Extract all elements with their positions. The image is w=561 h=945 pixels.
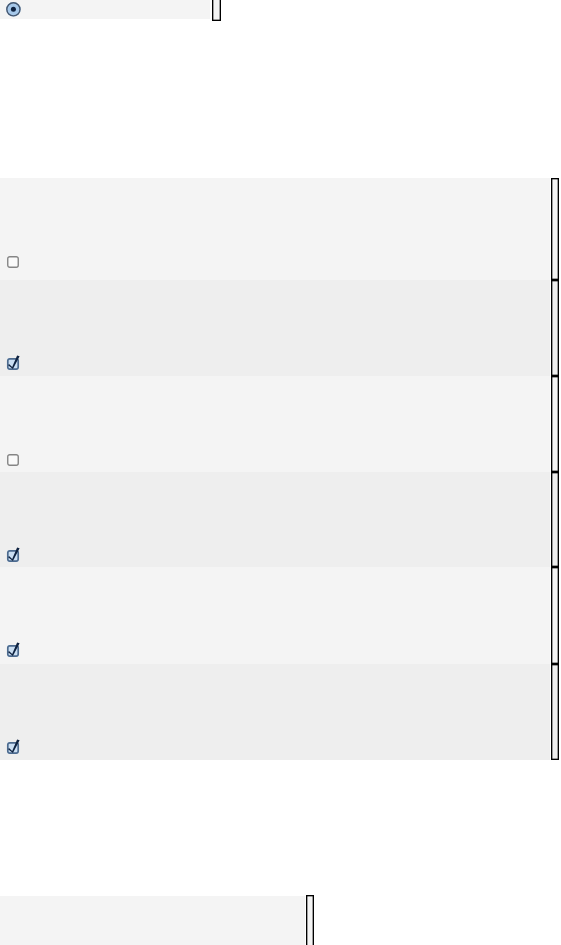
button[interactable]: Action <box>306 895 314 945</box>
button[interactable]: More options 2 <box>551 280 559 376</box>
button[interactable]: Menu <box>212 0 221 21</box>
button[interactable]: Item 1, not checked <box>7 248 27 268</box>
button[interactable]: Item 2, checked <box>0 280 550 376</box>
button[interactable]: Item 6, checked <box>7 734 27 754</box>
button[interactable]: Item 2, checked <box>7 350 27 370</box>
button[interactable]: Item 3, not checked <box>0 376 550 472</box>
button[interactable]: Item 5, checked <box>7 637 27 657</box>
button[interactable]: More options 3 <box>551 376 559 472</box>
button[interactable]: More options 5 <box>551 567 559 664</box>
button[interactable]: More options 1 <box>551 178 559 280</box>
button[interactable]: Item 3, not checked <box>7 446 27 466</box>
button[interactable]: Item 4, checked <box>7 542 27 562</box>
button[interactable]: Item 5, checked <box>0 567 550 664</box>
button[interactable]: Selected option <box>4 0 22 18</box>
button[interactable] <box>0 0 210 19</box>
button[interactable]: Item 1, not checked <box>0 178 550 280</box>
button[interactable]: More options 6 <box>551 664 559 760</box>
button[interactable]: More options 4 <box>551 472 559 567</box>
button[interactable]: Item 4, checked <box>0 472 550 567</box>
button[interactable]: Item 6, checked <box>0 664 550 760</box>
